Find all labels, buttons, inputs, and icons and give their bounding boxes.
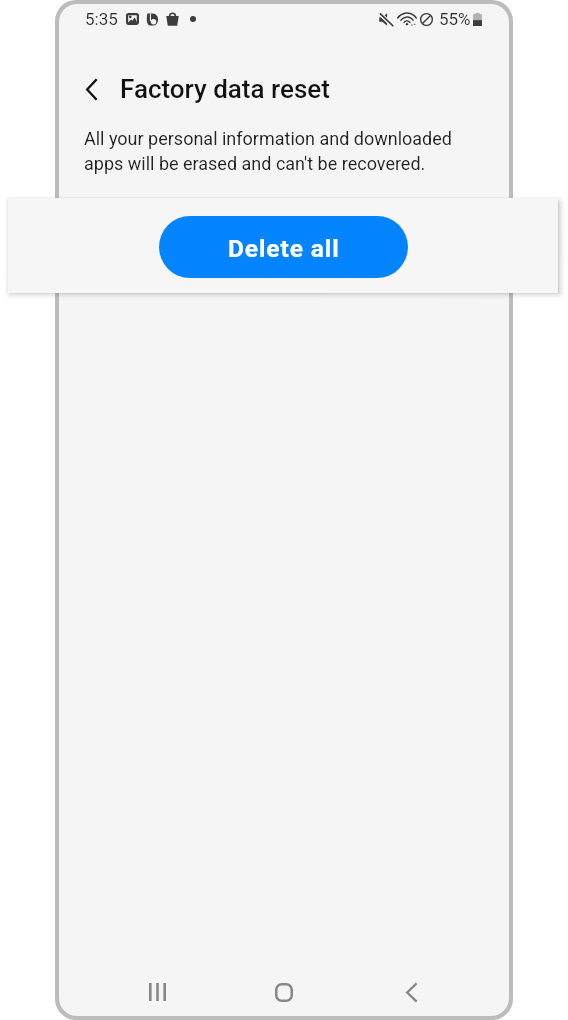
staticText: 5:35: [85, 9, 118, 29]
button[interactable]: Delete all: [159, 216, 408, 278]
button[interactable]: Back: [74, 72, 108, 106]
button[interactable]: Recent apps: [128, 968, 186, 1016]
staticText: 55%: [439, 9, 471, 29]
button[interactable]: Home: [255, 968, 313, 1016]
staticText: Factory data reset: [120, 74, 330, 104]
staticText: Delete all: [228, 234, 340, 263]
staticText: All your personal information and downlo…: [84, 128, 481, 175]
button[interactable]: Back: [382, 968, 440, 1016]
